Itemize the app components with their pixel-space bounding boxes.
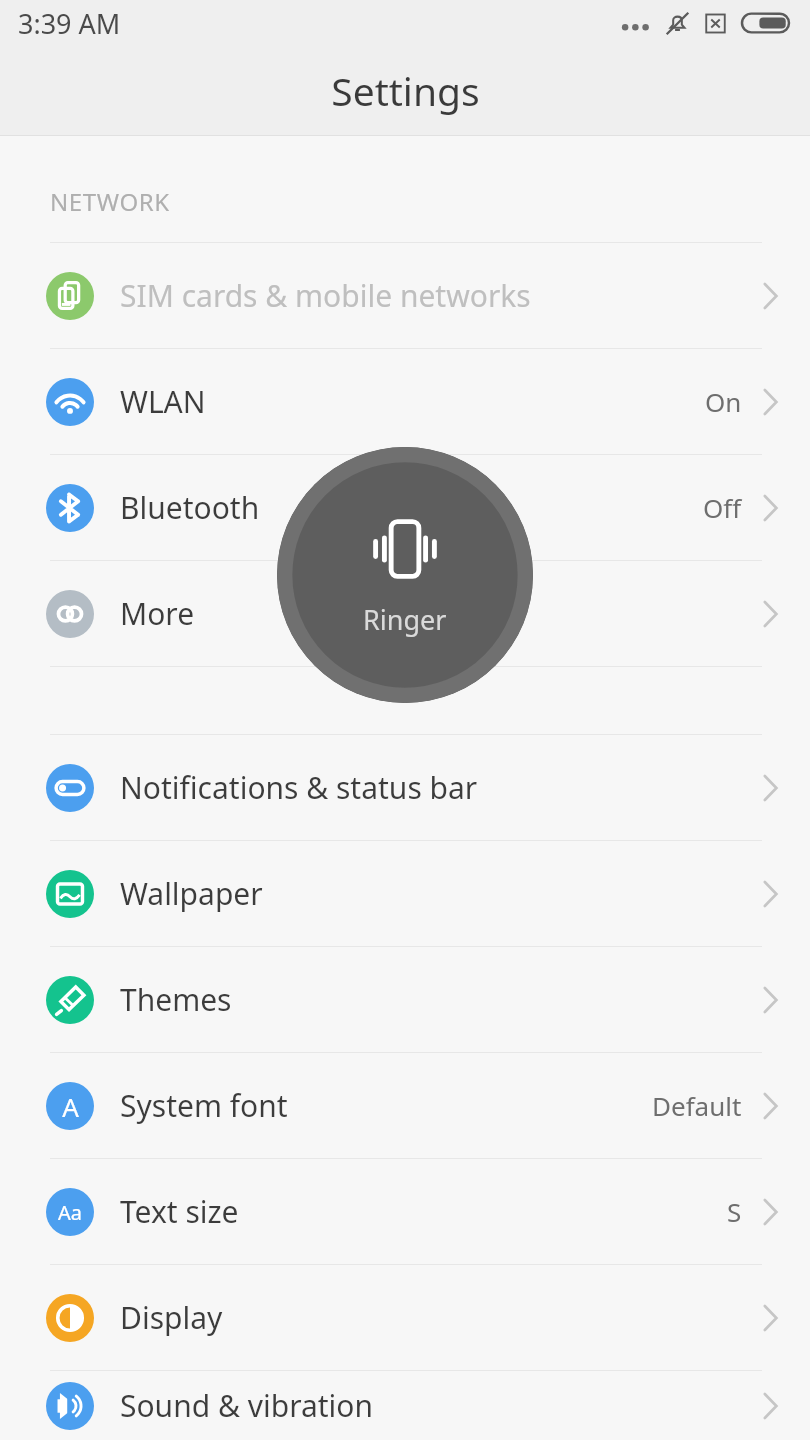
button[interactable]: Sound & vibration	[0, 1371, 810, 1440]
staticText: More	[120, 593, 760, 634]
staticText: NETWORK	[50, 185, 170, 218]
staticText: SIM cards & mobile networks	[120, 275, 760, 316]
staticText: Bluetooth	[120, 487, 703, 528]
button[interactable]: WLAN	[0, 349, 810, 454]
button[interactable]: Notifications & status bar	[0, 735, 810, 840]
staticText: S	[727, 1194, 742, 1229]
staticText: Text size	[120, 1191, 727, 1232]
staticText: Sound & vibration	[120, 1385, 760, 1426]
staticText: On	[705, 384, 742, 419]
staticText: Default	[652, 1088, 742, 1123]
button[interactable]: Themes	[0, 947, 810, 1052]
button[interactable]: Wallpaper	[0, 841, 810, 946]
staticText: A	[62, 1089, 79, 1124]
staticText: Wallpaper	[120, 873, 760, 914]
staticText: Aa	[58, 1199, 82, 1226]
staticText: Ringer	[363, 601, 447, 638]
staticText: Display	[120, 1297, 760, 1338]
staticText: Notifications & status bar	[120, 767, 760, 808]
button[interactable]: A	[0, 1053, 810, 1158]
staticText: WLAN	[120, 381, 705, 422]
button[interactable]: More	[0, 561, 810, 666]
button[interactable]: Aa	[0, 1159, 810, 1264]
button[interactable]: Display	[0, 1265, 810, 1370]
button[interactable]: Ringer mode vibrate	[277, 447, 533, 703]
staticText: System font	[120, 1085, 652, 1126]
staticText: Settings	[331, 64, 480, 117]
staticText: 3:39 AM	[18, 5, 121, 42]
staticText: Off	[703, 490, 742, 525]
button[interactable]: Bluetooth	[0, 455, 810, 560]
button[interactable]: SIM cards & mobile networks	[0, 243, 810, 348]
staticText: Themes	[120, 979, 760, 1020]
